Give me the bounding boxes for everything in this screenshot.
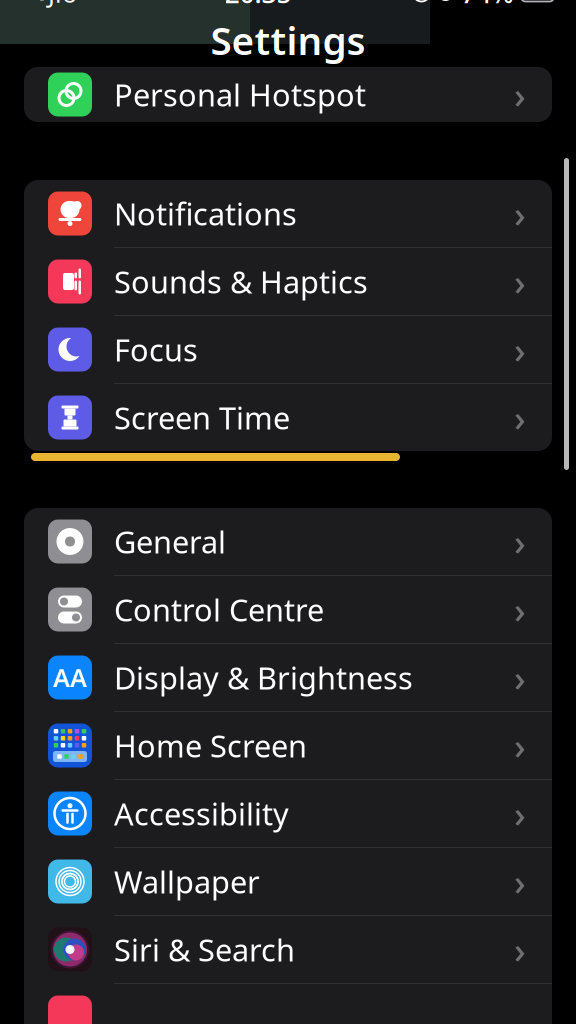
staticText: 74% [461, 0, 514, 11]
staticText: Home Screen [114, 725, 307, 766]
staticText: Notifications [114, 193, 297, 234]
staticText: Jio [48, 0, 77, 10]
button[interactable]: Focus [24, 316, 552, 384]
button[interactable]: Accessibility [24, 780, 552, 848]
button[interactable]: Screen Time [24, 384, 552, 451]
staticText: Wallpaper [114, 861, 260, 902]
staticText: › [514, 326, 526, 373]
staticText: › [514, 586, 526, 633]
button[interactable]: Personal Hotspot [24, 61, 552, 128]
button[interactable]: AA [24, 644, 552, 712]
staticText: Display & Brightness [114, 657, 413, 698]
staticText: › [514, 518, 526, 565]
staticText: Accessibility [114, 793, 289, 834]
button[interactable]: Sounds & Haptics [24, 248, 552, 316]
staticText: › [514, 926, 526, 973]
staticText: Focus [114, 329, 198, 370]
staticText: Sounds & Haptics [114, 261, 368, 302]
staticText: › [514, 722, 526, 769]
staticText: Screen Time [114, 397, 290, 438]
staticText: › [514, 71, 526, 118]
staticText: AA [53, 661, 87, 694]
staticText: › [514, 258, 526, 305]
button[interactable]: Home Screen [24, 712, 552, 780]
staticText: › [514, 394, 526, 441]
staticText: General [114, 521, 226, 562]
button[interactable]: Wallpaper [24, 848, 552, 916]
button[interactable]: General [24, 508, 552, 576]
staticText: Personal Hotspot [114, 74, 366, 115]
button[interactable]: Siri & Search [24, 916, 552, 984]
staticText: › [514, 790, 526, 837]
staticText: › [514, 190, 526, 237]
staticText: Settings [210, 14, 365, 66]
staticText: › [514, 654, 526, 701]
staticText: Siri & Search [114, 929, 295, 970]
staticText: 20:35 [224, 0, 291, 11]
button[interactable]: Control Centre [24, 576, 552, 644]
staticText: › [514, 858, 526, 905]
button[interactable]: Notifications [24, 180, 552, 248]
staticText: Control Centre [114, 589, 324, 630]
